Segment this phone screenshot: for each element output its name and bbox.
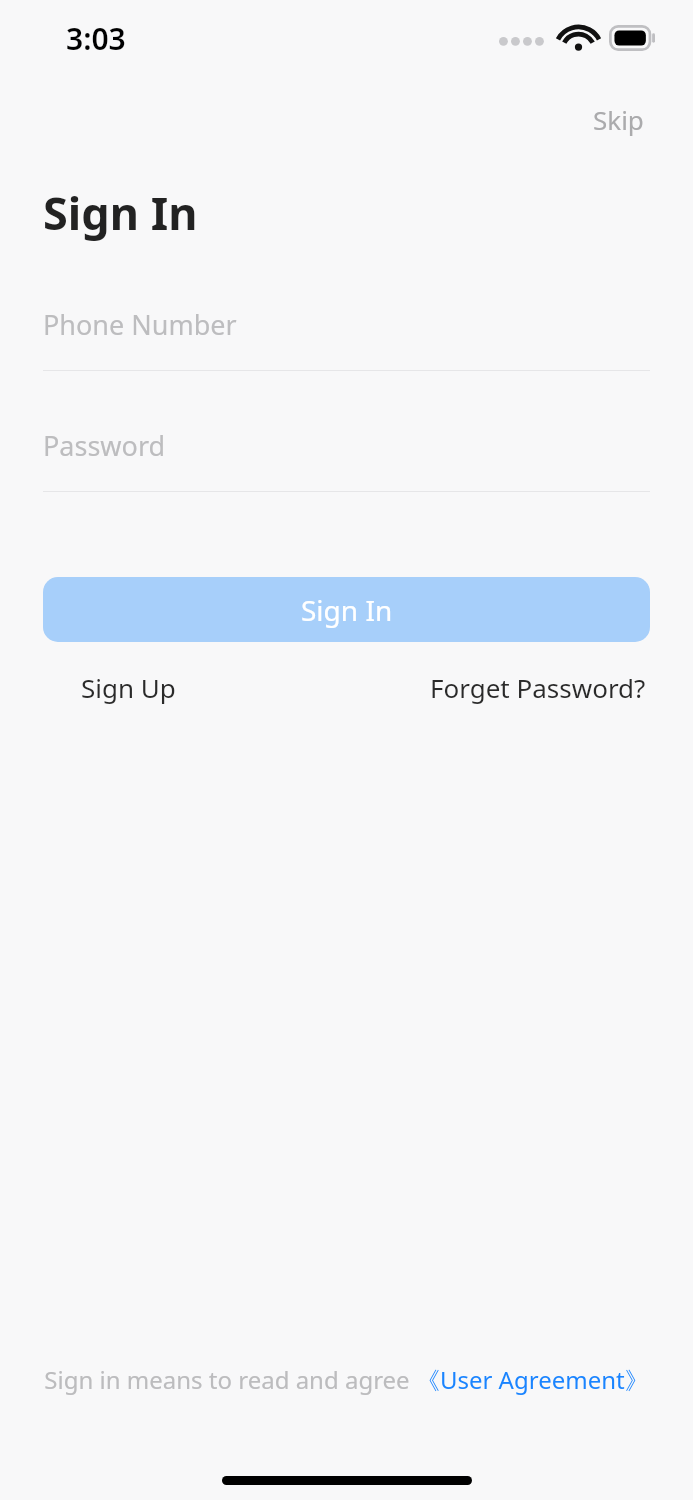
staticText: Sign Up	[81, 670, 176, 705]
staticText: Sign in means to read and agree 《User Ag…	[44, 1363, 649, 1396]
button[interactable]: Sign In	[43, 577, 650, 642]
staticText: Skip	[593, 102, 644, 137]
staticText: Sign In	[301, 591, 393, 629]
staticText: Phone Number	[43, 306, 237, 343]
button[interactable]: Forget Password?	[426, 664, 650, 711]
staticText: Password	[43, 427, 166, 464]
button[interactable]: Skip	[587, 98, 650, 141]
staticText: Sign In	[43, 182, 198, 243]
staticText: Forget Password?	[430, 670, 646, 705]
button[interactable]: Password	[43, 422, 650, 468]
staticText: 3:03	[66, 18, 126, 59]
button[interactable]: Phone Number	[43, 301, 650, 347]
button[interactable]: Sign Up	[43, 664, 214, 711]
button[interactable]: Sign in means to read and agree 《User Ag…	[40, 1359, 653, 1400]
